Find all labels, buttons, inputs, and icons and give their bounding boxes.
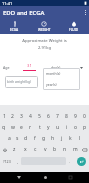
staticText: 7 bbox=[56, 113, 59, 120]
button[interactable]: ECGA bbox=[0, 19, 29, 34]
button[interactable]: Backspace bbox=[80, 144, 89, 155]
staticText: q bbox=[2, 124, 6, 131]
button[interactable]: n bbox=[60, 144, 70, 155]
staticText: year(s) bbox=[46, 82, 57, 87]
staticText: j bbox=[61, 135, 63, 142]
button[interactable]: 7 bbox=[53, 111, 62, 122]
staticText: 1 bbox=[3, 113, 6, 120]
staticText: 31 bbox=[27, 63, 32, 69]
staticText: t bbox=[39, 124, 41, 131]
button[interactable]: year(s) bbox=[43, 79, 80, 90]
staticText: g bbox=[42, 135, 46, 142]
button[interactable]: j bbox=[57, 133, 66, 144]
button[interactable]: q bbox=[0, 122, 8, 133]
button[interactable]: z bbox=[9, 144, 20, 155]
staticText: 11:41 bbox=[2, 1, 13, 6]
button[interactable]: month(s) bbox=[43, 68, 80, 79]
staticText: f bbox=[34, 135, 36, 142]
button[interactable]: k bbox=[66, 133, 75, 144]
staticText: a bbox=[8, 135, 11, 142]
button[interactable]: r bbox=[26, 122, 35, 133]
button[interactable]: w bbox=[8, 122, 17, 133]
button[interactable]: v bbox=[40, 144, 50, 155]
button[interactable]: WEIGHT bbox=[29, 19, 59, 34]
staticText: z bbox=[13, 146, 16, 153]
staticText: 0 bbox=[83, 113, 86, 120]
button[interactable]: 5 bbox=[35, 111, 44, 122]
button[interactable]: Recents bbox=[64, 172, 76, 183]
button[interactable]: , bbox=[14, 155, 21, 167]
staticText: ?123 bbox=[3, 159, 11, 164]
staticText: 8 bbox=[65, 113, 68, 120]
button[interactable]: FLUID bbox=[59, 19, 89, 34]
button[interactable]: y bbox=[44, 122, 53, 133]
button[interactable]: 0 bbox=[80, 111, 89, 122]
button[interactable]: 2 bbox=[8, 111, 17, 122]
button[interactable]: Home bbox=[39, 172, 51, 183]
button[interactable]: u bbox=[53, 122, 62, 133]
staticText: 2.91kg bbox=[0, 45, 89, 51]
staticText: . bbox=[69, 159, 71, 164]
staticText: i bbox=[66, 124, 68, 131]
staticText: m bbox=[73, 146, 78, 153]
staticText: s bbox=[16, 135, 19, 142]
button[interactable]: 9 bbox=[71, 111, 80, 122]
button[interactable]: 31 bbox=[23, 63, 36, 71]
staticText: , bbox=[17, 159, 19, 164]
staticText: birth weight(kg) bbox=[7, 80, 31, 84]
button[interactable]: 1 bbox=[0, 111, 8, 122]
staticText: o bbox=[74, 124, 78, 131]
button[interactable]: p bbox=[80, 122, 89, 133]
button[interactable]: f bbox=[30, 133, 39, 144]
button[interactable]: b bbox=[50, 144, 60, 155]
button[interactable]: Shift bbox=[0, 144, 9, 155]
button[interactable]: ?123 bbox=[0, 155, 14, 167]
button[interactable]: day(s) bbox=[51, 65, 83, 70]
staticText: FLUID bbox=[69, 28, 79, 32]
button[interactable]: d bbox=[21, 133, 30, 144]
staticText: 4 bbox=[29, 113, 32, 120]
button[interactable]: birth weight(kg) bbox=[5, 76, 38, 88]
staticText: day(s) bbox=[51, 65, 61, 70]
staticText: b bbox=[53, 146, 57, 153]
staticText: d bbox=[24, 135, 28, 142]
staticText: Age bbox=[3, 65, 10, 70]
button[interactable]: a bbox=[5, 133, 13, 144]
staticText: ECGA bbox=[10, 28, 19, 32]
button[interactable]: e bbox=[17, 122, 26, 133]
button[interactable]: l bbox=[75, 133, 84, 144]
button[interactable]: 4 bbox=[26, 111, 35, 122]
button[interactable]: o bbox=[71, 122, 80, 133]
button[interactable]: i bbox=[62, 122, 71, 133]
staticText: WEIGHT bbox=[38, 28, 51, 32]
staticText: 3 bbox=[20, 113, 23, 120]
button[interactable]: x bbox=[20, 144, 30, 155]
button[interactable]: More options bbox=[85, 10, 86, 15]
staticText: w bbox=[11, 124, 15, 131]
button[interactable]: m bbox=[70, 144, 80, 155]
staticText: EDD and ECGA bbox=[3, 9, 45, 17]
staticText: r bbox=[29, 124, 32, 131]
button[interactable]: Enter bbox=[73, 155, 89, 167]
button[interactable]: c bbox=[30, 144, 40, 155]
staticText: month(s) bbox=[46, 71, 61, 76]
staticText: l bbox=[79, 135, 81, 142]
staticText: u bbox=[56, 124, 60, 131]
button[interactable]: g bbox=[39, 133, 48, 144]
staticText: 2 bbox=[11, 113, 14, 120]
button[interactable]: 6 bbox=[44, 111, 53, 122]
staticText: k bbox=[69, 135, 72, 142]
button[interactable]: h bbox=[48, 133, 57, 144]
staticText: h bbox=[51, 135, 55, 142]
button[interactable]: Hide keyboard bbox=[13, 172, 25, 183]
staticText: 6 bbox=[47, 113, 50, 120]
staticText: e bbox=[20, 124, 23, 131]
staticText: n bbox=[63, 146, 67, 153]
button[interactable]: 3 bbox=[17, 111, 26, 122]
button[interactable]: t bbox=[35, 122, 44, 133]
button[interactable]: 8 bbox=[62, 111, 71, 122]
button[interactable]: s bbox=[13, 133, 21, 144]
staticText: c bbox=[34, 146, 37, 153]
